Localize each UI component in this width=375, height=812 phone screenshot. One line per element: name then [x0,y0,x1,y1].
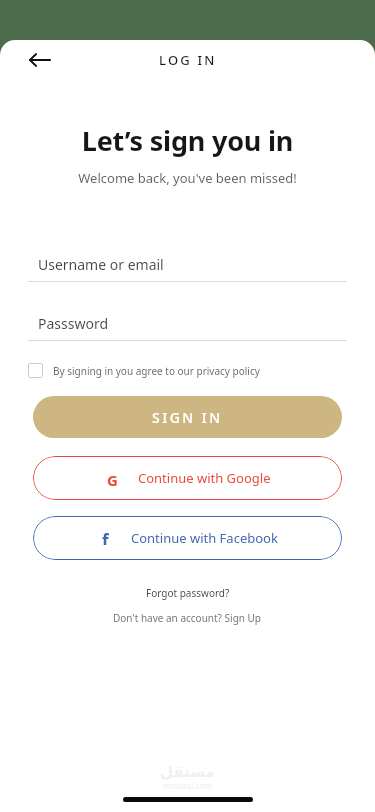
staticText: By signing in you agree to our privacy p… [53,364,260,378]
staticText: Don't have an account? Sign Up [113,611,262,625]
staticText: SIGN IN [152,408,223,427]
staticText: LOG IN [159,51,217,69]
button[interactable]: By signing in you agree to our privacy p… [28,363,347,378]
button[interactable]: G [33,456,342,500]
button[interactable]: Back [22,42,58,78]
staticText: G [107,470,118,486]
button[interactable]: Forgot password? [0,586,375,600]
button[interactable]: f [33,516,342,560]
staticText: mostaql.com [163,780,212,791]
staticText: مستقل [160,763,215,780]
staticText: Continue with Facebook [131,529,278,547]
staticText: Username or email [38,255,164,274]
staticText: Welcome back, you've been missed! [0,169,375,187]
button[interactable]: SIGN IN [33,396,342,438]
button[interactable]: Don't have an account? Sign Up [0,611,375,625]
staticText: Passsword [38,314,109,333]
staticText: Continue with Google [138,469,271,487]
staticText: Let’s sign you in [0,122,375,159]
button[interactable]: Username or email [0,247,375,281]
staticText: f [102,529,109,545]
button[interactable]: Passsword [0,306,375,340]
staticText: Forgot password? [146,586,230,600]
